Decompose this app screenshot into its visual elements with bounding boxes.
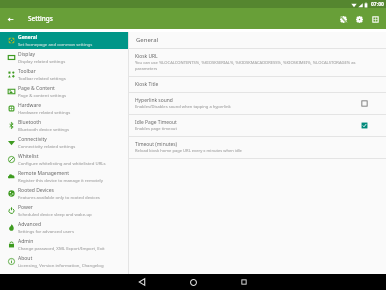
button[interactable]: Remote Management	[0, 168, 128, 185]
staticText: About	[18, 255, 33, 262]
button[interactable]: General	[0, 32, 128, 49]
staticText: Whitelist	[18, 153, 39, 160]
staticText: Connectivity related settings	[18, 143, 76, 149]
staticText: Kiosk Title	[135, 81, 159, 88]
button[interactable]: Display	[0, 49, 128, 66]
staticText: Idle Page Timeout	[135, 119, 177, 126]
button[interactable]: Hardware	[0, 100, 128, 117]
button[interactable]: Advanced	[0, 219, 128, 236]
button[interactable]: Toolbar	[0, 66, 128, 83]
staticText: You can use %LOCALCONTENTS%, %KIOSKSERIA…	[135, 60, 368, 72]
staticText: Enables page timeout	[135, 126, 177, 132]
button[interactable]: Back	[0, 9, 20, 29]
staticText: Reload kiosk home page URL every x minut…	[135, 148, 242, 154]
staticText: Remote Management	[18, 170, 70, 177]
button[interactable]: Page & Content	[0, 83, 128, 100]
staticText: Enables/Disables sound when tapping a hy…	[135, 104, 231, 110]
staticText: Hardware related settings	[18, 109, 71, 115]
staticText: Licensing, Version information, Changelo…	[18, 262, 104, 268]
staticText: 07:00	[371, 1, 384, 8]
staticText: Bluetooth device settings	[18, 126, 69, 132]
staticText: Page & Content	[18, 85, 55, 92]
staticText: Register this device to manage it remote…	[18, 177, 103, 183]
button[interactable]: Kiosk URL	[129, 49, 386, 77]
button[interactable]: Settings	[351, 11, 367, 27]
staticText: Page & content settings	[18, 92, 67, 98]
staticText: General	[136, 36, 159, 44]
staticText: Admin	[18, 238, 34, 245]
staticText: Scheduled device sleep and wake-up	[18, 211, 92, 217]
button[interactable]: Back	[134, 274, 150, 290]
staticText: Configure whitelisting and whitelisted U…	[18, 160, 106, 166]
staticText: Features available only to rooted device…	[18, 194, 100, 200]
button[interactable]: About	[0, 253, 128, 270]
button[interactable]: Power	[0, 202, 128, 219]
staticText: Display	[18, 51, 36, 58]
staticText: Rooted Devices	[18, 187, 54, 194]
staticText: Hyperlink sound	[135, 97, 173, 104]
staticText: Change password, XML Export/Import, Exit	[18, 245, 105, 251]
button[interactable]: Hyperlink sound	[129, 93, 386, 115]
staticText: Toolbar related settings	[18, 75, 66, 81]
button[interactable]: Timeout (minutes)	[129, 137, 386, 159]
button[interactable]: Idle Page Timeout	[129, 115, 386, 137]
staticText: Power	[18, 204, 33, 211]
staticText: Bluetooth	[18, 119, 42, 126]
button[interactable]: Admin	[0, 236, 128, 253]
staticText: Timeout (minutes)	[135, 141, 178, 148]
button[interactable]: Save	[367, 11, 383, 27]
button[interactable]: Bluetooth	[0, 117, 128, 134]
staticText: Kiosk URL	[135, 53, 158, 60]
button[interactable]: Kiosk Title	[129, 77, 386, 93]
staticText: Display related settings	[18, 58, 66, 64]
staticText: Settings	[28, 14, 53, 23]
staticText: Settings for advanced users	[18, 228, 74, 234]
button[interactable]: Rooted Devices	[0, 185, 128, 202]
staticText: Toolbar	[18, 68, 36, 75]
button[interactable]: Disable settings	[335, 11, 351, 27]
staticText: Advanced	[18, 221, 42, 228]
button[interactable]: Home	[185, 274, 201, 290]
button[interactable]: Recents	[236, 274, 252, 290]
staticText: General	[18, 34, 38, 41]
staticText: Set homepage and common settings	[18, 41, 93, 47]
button[interactable]: Whitelist	[0, 151, 128, 168]
button[interactable]: Connectivity	[0, 134, 128, 151]
staticText: Connectivity	[18, 136, 47, 143]
staticText: Hardware	[18, 102, 42, 109]
